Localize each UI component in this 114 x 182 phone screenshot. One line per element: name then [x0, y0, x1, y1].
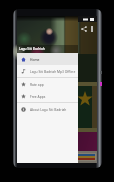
- button[interactable]: Home: [17, 53, 78, 65]
- button[interactable]: Free Apps: [17, 90, 78, 102]
- staticText: About Lagu Siti Badriah: [30, 107, 67, 111]
- staticText: Lagu Siti Badriah: [19, 47, 45, 51]
- button[interactable]: More options: [88, 25, 96, 33]
- button[interactable]: Lagu Siti Badriah Mp3 Offline: [17, 65, 78, 77]
- staticText: Free Apps: [30, 94, 46, 98]
- staticText: Lagu Siti Badriah Mp3 Offline: [20, 66, 67, 71]
- staticText: Home: [30, 57, 40, 61]
- staticText: Lagu Siti Badriah Mp3 Offline: [30, 69, 76, 73]
- staticText: Rate app: [30, 82, 44, 86]
- button[interactable]: Rate app: [17, 78, 78, 90]
- button[interactable]: About Lagu Siti Badriah: [17, 103, 78, 115]
- button[interactable]: Share: [79, 24, 88, 33]
